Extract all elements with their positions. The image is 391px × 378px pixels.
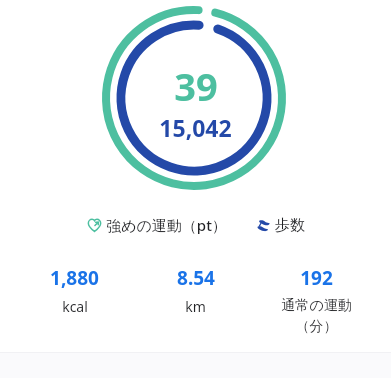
staticText: km: [185, 297, 206, 316]
staticText: kcal: [62, 297, 88, 316]
button[interactable]: Daily activity rings: [0, 0, 391, 200]
staticText: 1,880: [50, 265, 99, 291]
staticText: 39: [174, 60, 218, 112]
button[interactable]: Heart Points: [84, 211, 229, 239]
other: Steps: [255, 217, 272, 234]
staticText: 8.54: [177, 265, 215, 291]
button[interactable]: 192: [256, 263, 377, 337]
other: Heart Points: [86, 217, 103, 234]
staticText: 15,042: [159, 112, 232, 143]
staticText: 強めの運動（pt）: [106, 215, 227, 235]
staticText: 192: [300, 265, 333, 291]
staticText: 歩数: [275, 216, 305, 235]
button[interactable]: Steps: [253, 212, 307, 239]
button[interactable]: 1,880: [14, 263, 135, 318]
button[interactable]: 8.54: [135, 263, 256, 318]
staticText: 通常の運動 （分）: [281, 297, 352, 335]
